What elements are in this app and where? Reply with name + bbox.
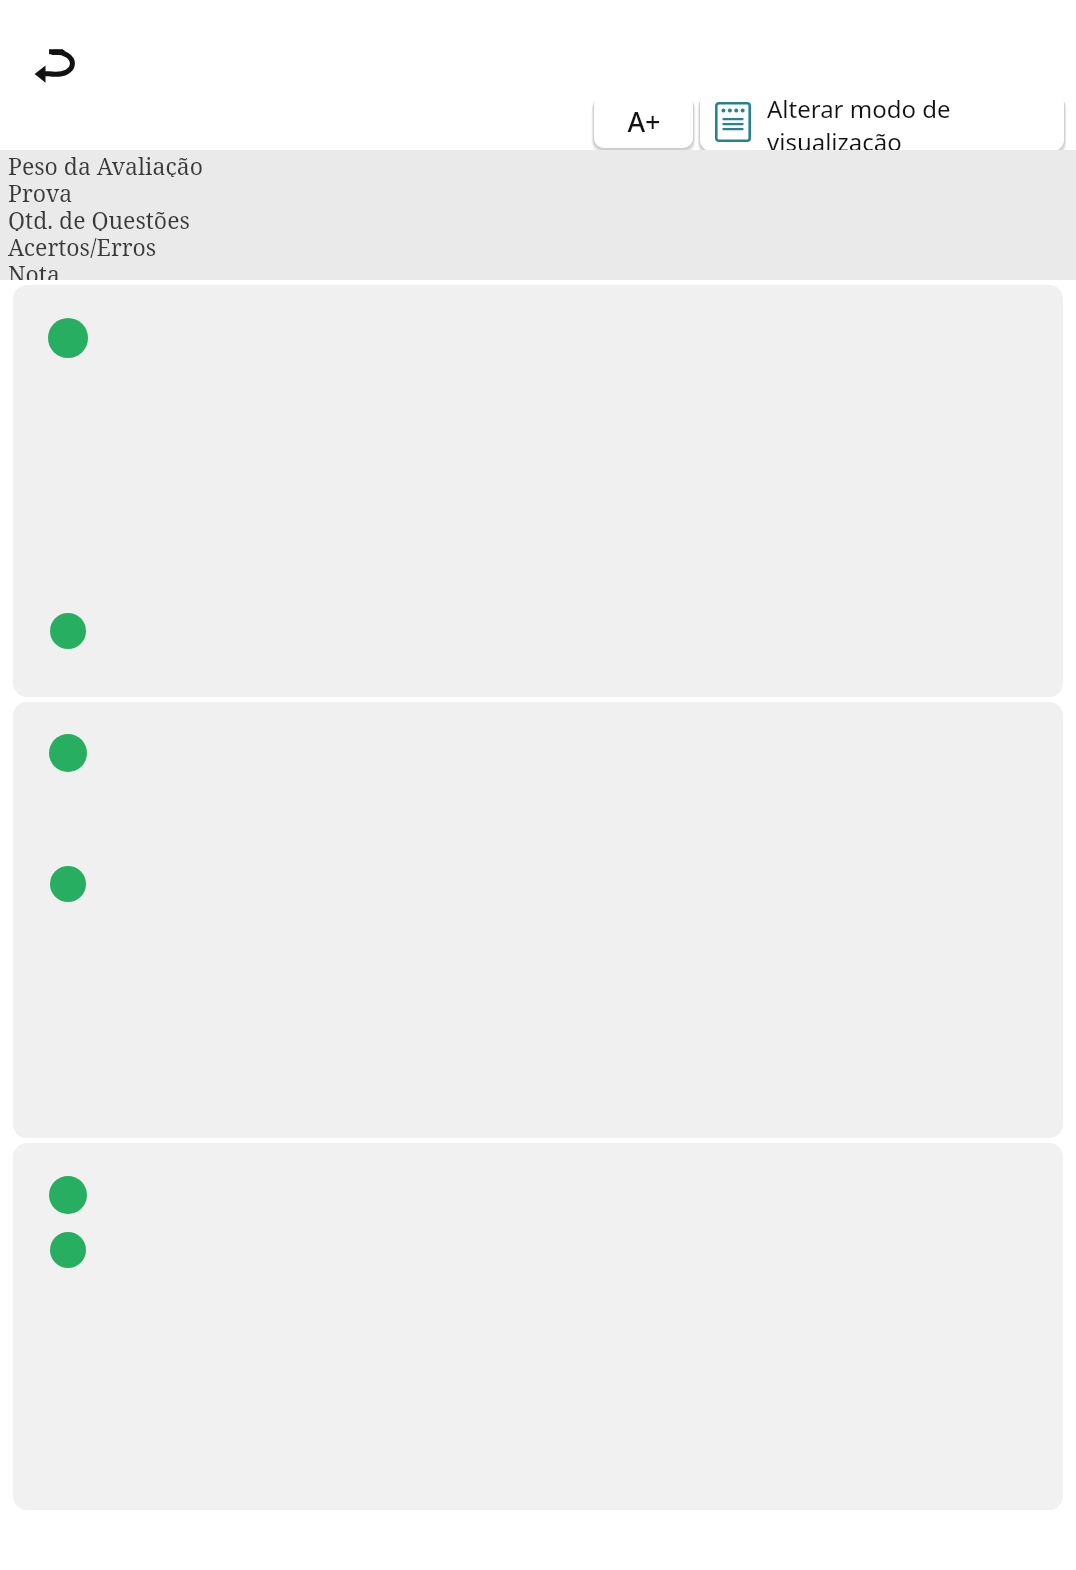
staticText: Peso da Avaliação <box>8 150 203 177</box>
button[interactable]: A+ <box>594 94 693 148</box>
staticText: Nota <box>8 258 60 280</box>
staticText: Prova <box>8 177 73 204</box>
staticText: Qtd. de Questões <box>8 204 190 231</box>
button[interactable] <box>13 285 1063 697</box>
button[interactable]: Alterar modo de visualização <box>700 92 1064 151</box>
button[interactable] <box>13 702 1063 1138</box>
staticText: Alterar modo de visualização <box>767 92 1050 151</box>
button[interactable]: Voltar <box>26 38 90 94</box>
staticText: Acertos/Erros <box>8 231 157 258</box>
staticText: A+ <box>627 103 661 140</box>
button[interactable] <box>13 1143 1063 1510</box>
